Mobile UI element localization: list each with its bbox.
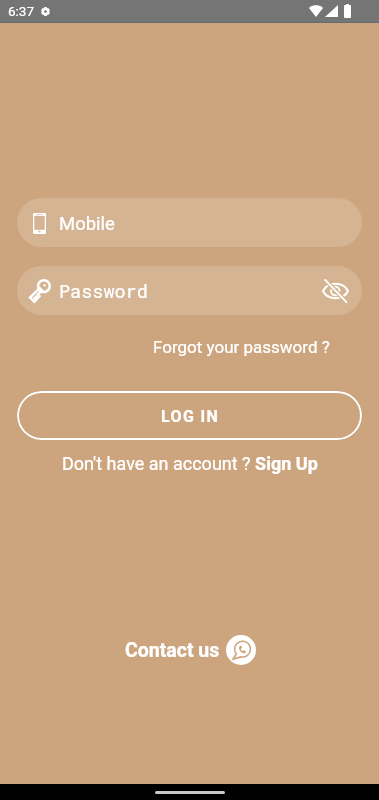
staticText: Password	[59, 279, 148, 303]
staticText: Contact us	[125, 639, 220, 662]
button[interactable]: Don't have an account ? Sign Up	[62, 453, 318, 474]
button[interactable]: Contact us	[125, 635, 256, 665]
button[interactable]: LOG IN	[17, 391, 362, 440]
button[interactable]: Password	[17, 266, 362, 315]
button[interactable]: Show password	[310, 266, 362, 315]
button[interactable]: Mobile	[17, 198, 362, 247]
staticText: LOG IN	[161, 407, 220, 426]
staticText: 6:37	[8, 3, 35, 19]
button[interactable]: Forgot your password ?	[153, 337, 330, 357]
staticText: Mobile	[59, 213, 115, 235]
